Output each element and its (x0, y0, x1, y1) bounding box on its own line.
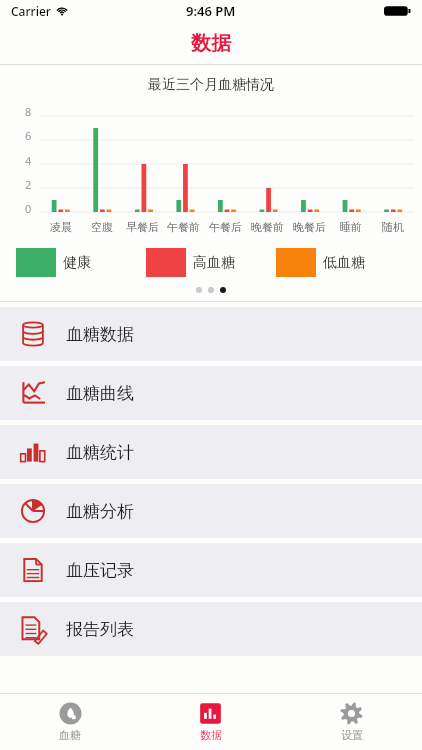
staticText: 血糖 (59, 728, 81, 742)
staticText: 午餐前 (167, 220, 200, 234)
button[interactable]: 血糖 (0, 694, 140, 750)
staticText: 随机 (382, 220, 404, 234)
button[interactable]: 报告列表 (0, 602, 422, 656)
staticText: 血糖分析 (66, 501, 134, 522)
staticText: 睡前 (340, 220, 362, 234)
staticText: 高血糖 (193, 254, 235, 272)
staticText: Carrier (11, 3, 51, 19)
staticText: 4 (25, 153, 32, 168)
staticText: 晚餐前 (251, 220, 284, 234)
button[interactable]: 血糖分析 (0, 484, 422, 538)
button[interactable]: 设置 (281, 694, 422, 750)
button[interactable]: 血糖数据 (0, 307, 422, 361)
staticText: 血糖曲线 (66, 383, 134, 404)
staticText: 早餐后 (126, 220, 159, 234)
staticText: 报告列表 (66, 619, 134, 640)
staticText: 低血糖 (323, 254, 365, 272)
staticText: 晚餐后 (293, 220, 326, 234)
staticText: 9:46 PM (186, 2, 236, 20)
staticText: 最近三个月血糖情况 (148, 76, 274, 94)
staticText: 午餐后 (209, 220, 242, 234)
staticText: 空腹 (91, 220, 113, 234)
staticText: 2 (25, 177, 32, 192)
staticText: 数据 (200, 728, 222, 742)
staticText: 0 (25, 201, 32, 216)
staticText: 6 (25, 128, 32, 143)
staticText: 血压记录 (66, 560, 134, 581)
staticText: 数据 (191, 31, 231, 56)
button[interactable]: 数据 (140, 694, 281, 750)
staticText: 8 (25, 104, 32, 119)
button[interactable]: 血糖曲线 (0, 366, 422, 420)
button[interactable]: 血压记录 (0, 543, 422, 597)
button[interactable]: 血糖统计 (0, 425, 422, 479)
staticText: 健康 (63, 254, 91, 272)
staticText: 血糖统计 (66, 442, 134, 463)
staticText: 凌晨 (50, 220, 72, 234)
staticText: 血糖数据 (66, 324, 134, 345)
staticText: 设置 (341, 728, 363, 742)
